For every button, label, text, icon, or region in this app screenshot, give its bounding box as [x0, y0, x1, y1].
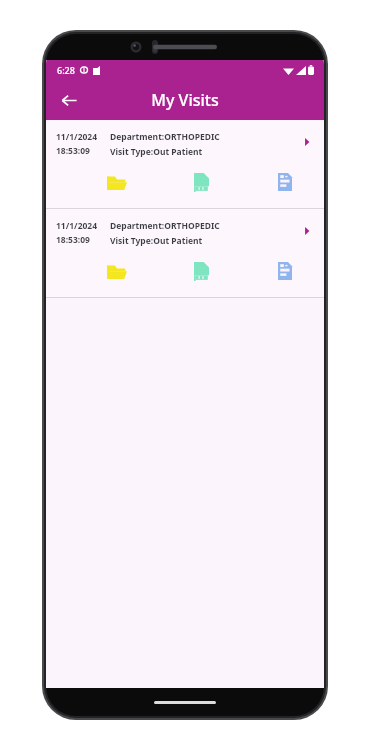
- staticText: 11/1/2024: [56, 220, 98, 232]
- button[interactable]: Open report: [270, 256, 300, 286]
- button[interactable]: Open report: [270, 167, 300, 197]
- button[interactable]: 11/1/2024: [46, 120, 324, 208]
- button[interactable]: Open folder: [102, 167, 132, 197]
- staticText: My Visits: [151, 89, 219, 111]
- button[interactable]: Open folder: [102, 256, 132, 286]
- staticText: Department:ORTHOPEDIC: [110, 220, 220, 232]
- button[interactable]: Open PDF: [186, 167, 216, 197]
- staticText: 18:53:09: [56, 145, 90, 157]
- button[interactable]: Back: [52, 83, 86, 117]
- button[interactable]: Open visit details: [296, 220, 318, 242]
- button[interactable]: Open visit details: [296, 131, 318, 153]
- staticText: Visit Type:Out Patient: [110, 235, 203, 247]
- button[interactable]: Open PDF: [186, 256, 216, 286]
- button[interactable]: 11/1/2024: [46, 209, 324, 297]
- staticText: 11/1/2024: [56, 131, 98, 143]
- staticText: Department:ORTHOPEDIC: [110, 131, 220, 143]
- staticText: Visit Type:Out Patient: [110, 146, 203, 158]
- staticText: 6:28: [57, 64, 75, 76]
- staticText: 18:53:09: [56, 234, 90, 246]
